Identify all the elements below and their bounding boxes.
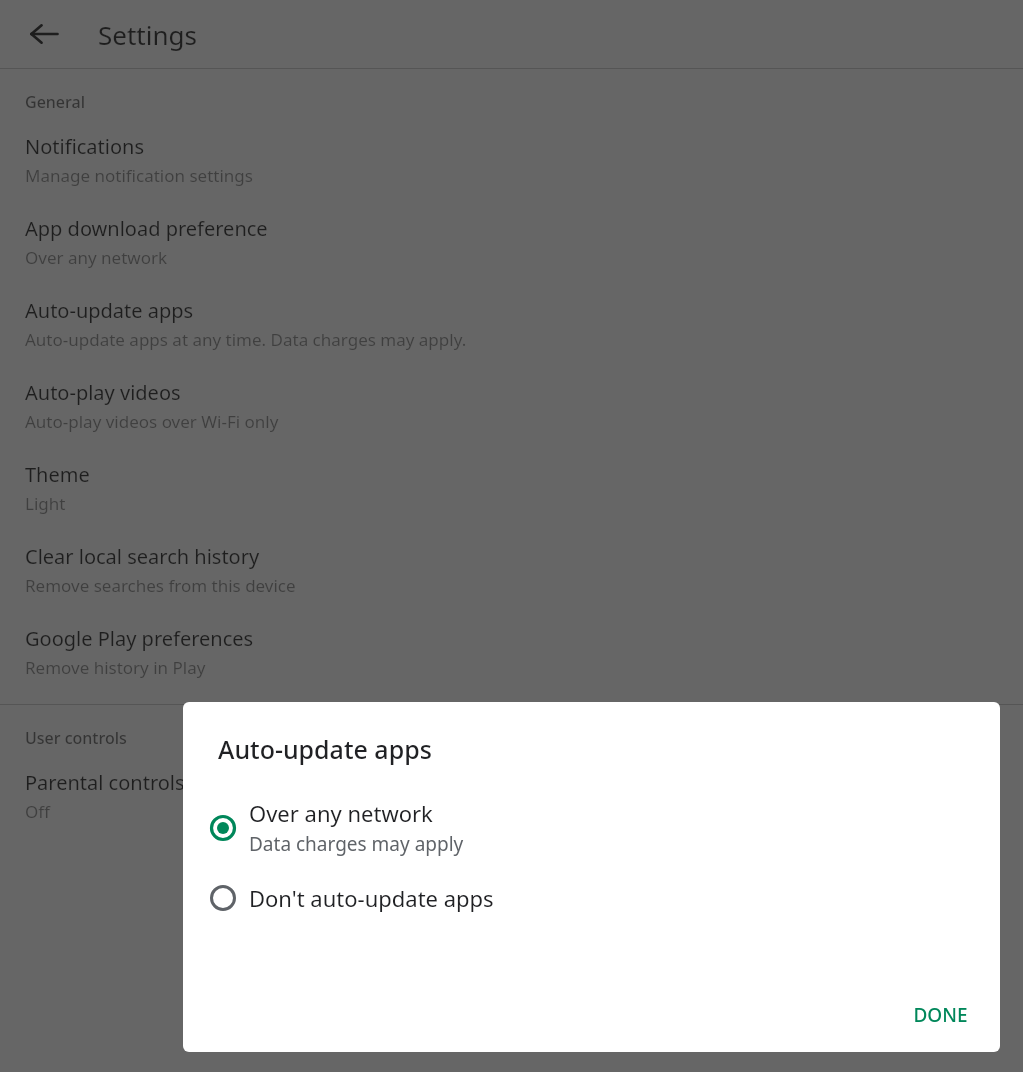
staticText: Over any network	[249, 798, 433, 828]
button[interactable]: Clear local search history	[0, 529, 1023, 611]
button[interactable]: Don't auto-update apps	[183, 879, 1000, 917]
staticText: Remove searches from this device	[25, 574, 296, 597]
staticText: Auto-play videos	[25, 379, 181, 406]
staticText: Off	[25, 800, 50, 823]
staticText: Theme	[25, 461, 90, 488]
button[interactable]: Auto-update apps	[0, 283, 1023, 365]
button[interactable]: Notifications	[0, 119, 1023, 201]
staticText: Over any network	[25, 246, 168, 269]
button[interactable]: App download preference	[0, 201, 1023, 283]
staticText: Google Play preferences	[25, 625, 254, 652]
staticText: General	[25, 91, 85, 113]
staticText: Parental controls	[25, 769, 185, 796]
staticText: Light	[25, 492, 66, 515]
button[interactable]: Back	[16, 6, 72, 62]
staticText: Manage notification settings	[25, 164, 253, 187]
staticText: Auto-update apps	[25, 297, 194, 324]
staticText: User controls	[25, 727, 127, 749]
staticText: Data charges may apply	[249, 831, 464, 857]
staticText: Clear local search history	[25, 543, 260, 570]
staticText: App download preference	[25, 215, 268, 242]
button[interactable]: Over any network	[183, 794, 1000, 861]
staticText: DONE	[913, 1002, 968, 1028]
staticText: Auto-update apps at any time. Data charg…	[25, 328, 467, 351]
staticText: Remove history in Play	[25, 656, 206, 679]
staticText: Auto-play videos over Wi-Fi only	[25, 410, 279, 433]
button[interactable]: DONE	[899, 992, 982, 1038]
staticText: Auto-update apps	[218, 732, 432, 766]
staticText: Don't auto-update apps	[249, 883, 494, 913]
button[interactable]: Google Play preferences	[0, 611, 1023, 693]
staticText: Settings	[98, 17, 197, 52]
button[interactable]: Parental controls	[0, 755, 1023, 837]
button[interactable]: Theme	[0, 447, 1023, 529]
staticText: Notifications	[25, 133, 144, 160]
button[interactable]: Auto-play videos	[0, 365, 1023, 447]
